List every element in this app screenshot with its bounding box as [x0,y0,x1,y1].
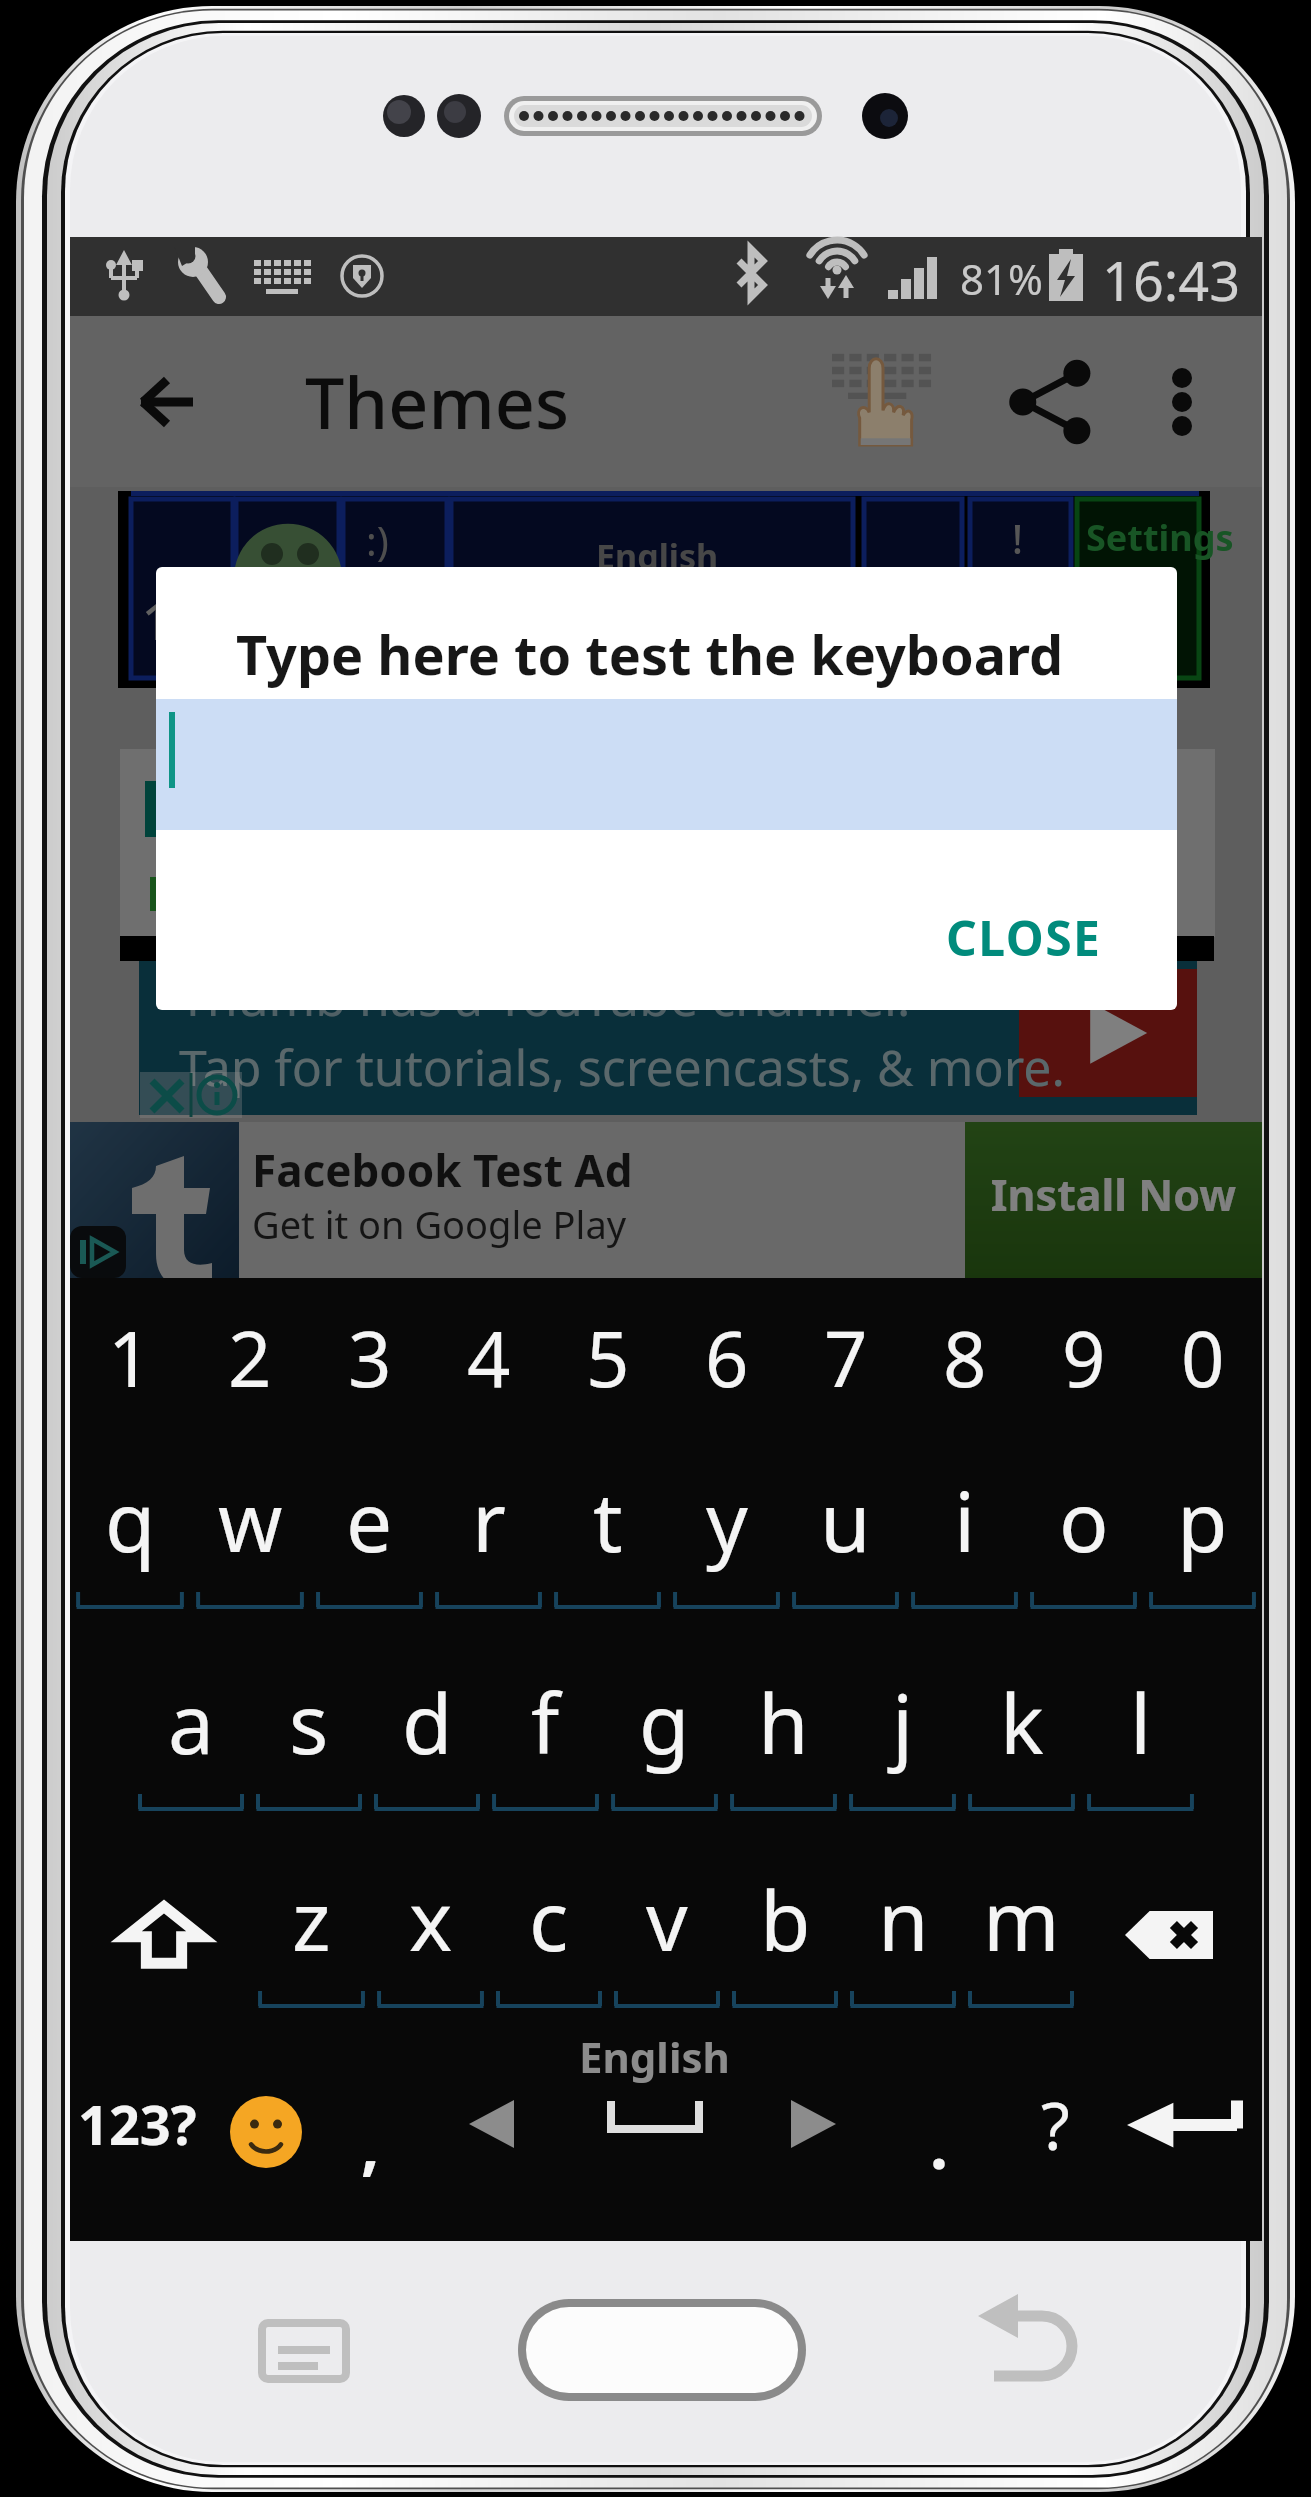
button[interactable]: , [315,2059,425,2189]
button[interactable]: Emoji [206,2067,326,2197]
button[interactable]: Theme card [120,749,1215,937]
button[interactable]: x [371,1858,490,2008]
staticText: w [218,1464,283,1576]
staticText: 9 [1062,1306,1106,1410]
staticText: Get it on Google Play [252,1198,627,1250]
staticText: . [930,2101,948,2188]
staticText: :) [366,513,389,567]
button[interactable]: a [132,1661,250,1811]
button[interactable]: CLOSE [894,875,1154,999]
staticText: n [878,1863,929,1975]
button[interactable]: m [962,1858,1080,2008]
button[interactable]: o [1024,1459,1143,1609]
button[interactable]: Previous [431,2059,551,2189]
staticText: y [706,1464,748,1576]
staticText: a [168,1666,215,1778]
button[interactable]: Test keyboard [810,316,950,487]
button[interactable]: i [905,1459,1024,1609]
staticText: j [892,1666,914,1778]
staticText: 81% [960,250,1043,307]
button[interactable]: ? [1000,2059,1110,2189]
button[interactable]: 2 [190,1297,310,1447]
button[interactable]: 3 [310,1297,429,1447]
staticText: English [596,533,719,579]
staticText: ! [1012,511,1023,565]
button[interactable]: 0 [1143,1297,1262,1447]
staticText: Facebook Test Ad [252,1140,633,1200]
staticText: i [954,1464,976,1576]
staticText: s [289,1666,329,1778]
button[interactable]: b [726,1858,844,2008]
staticText: u [820,1464,871,1576]
staticText: 16:43 [1102,243,1241,317]
staticText: x [409,1863,453,1975]
staticText: m [983,1863,1060,1975]
button[interactable]: Backspace [1099,1875,1239,1995]
button[interactable]: c [490,1858,608,2008]
button[interactable]: Theme preview [118,491,1210,688]
button[interactable]: Share [984,316,1114,487]
button[interactable]: 123? [62,2059,212,2189]
staticText: p [1177,1464,1228,1576]
button[interactable]: z [252,1858,371,2008]
button[interactable]: g [605,1661,724,1811]
staticText: Install Now [965,1165,1262,1224]
staticText: 6 [705,1306,749,1410]
button[interactable]: 5 [548,1297,667,1447]
staticText: z [292,1863,331,1975]
button[interactable]: Enter [1115,2059,1255,2189]
button[interactable]: Back [96,317,236,486]
staticText: 5 [586,1306,630,1410]
staticText: b [760,1863,811,1975]
button[interactable]: Facebook Test Ad [70,1122,1262,1278]
staticText: 123? [78,2087,197,2161]
button[interactable]: u [786,1459,905,1609]
staticText: q [105,1464,156,1576]
button[interactable]: v [608,1858,726,2008]
button[interactable]: n [844,1858,962,2008]
staticText: Tap for tutorials, screencasts, & more. [179,1033,1065,1101]
button[interactable]: w [190,1459,310,1609]
staticText: o [1059,1464,1109,1576]
button[interactable]: Next [753,2059,873,2189]
button[interactable]: 9 [1024,1297,1143,1447]
staticText: 8 [943,1306,987,1410]
staticText: 1 [108,1306,152,1410]
button[interactable]: k [962,1661,1081,1811]
button[interactable]: f [486,1661,605,1811]
button[interactable]: r [429,1459,548,1609]
button[interactable]: . [884,2059,994,2189]
button[interactable]: q [70,1459,190,1609]
button[interactable]: t [548,1459,667,1609]
staticText: 1 [142,587,171,655]
button[interactable]: Thumb has a YouTube channel. [139,961,1197,1115]
button[interactable]: l [1081,1661,1200,1811]
button[interactable]: e [310,1459,429,1609]
staticText: 2 [228,1306,272,1410]
staticText: CLOSE [946,905,1102,970]
staticText: Type here to test the keyboard [236,617,1064,691]
button[interactable]: y [667,1459,786,1609]
staticText: 0 [1181,1306,1225,1410]
button[interactable]: s [250,1661,368,1811]
staticText: f [531,1666,560,1778]
button[interactable]: Shift [94,1875,234,1995]
button[interactable]: 1 [70,1297,190,1447]
button[interactable]: 4 [429,1297,548,1447]
staticText: e [346,1464,393,1576]
button[interactable]: 6 [667,1297,786,1447]
staticText: Themes [305,354,569,449]
staticText: t [593,1464,623,1576]
button[interactable]: p [1143,1459,1262,1609]
button[interactable]: More options [1135,316,1229,487]
staticText: 7 [824,1306,868,1410]
staticText: k [1000,1666,1044,1778]
button[interactable]: h [724,1661,843,1811]
button[interactable]: 7 [786,1297,905,1447]
staticText: English [579,2028,730,2085]
staticText: d [402,1666,453,1778]
button[interactable]: d [368,1661,486,1811]
button[interactable]: 8 [905,1297,1024,1447]
button[interactable]: Space [529,2028,779,2188]
button[interactable]: j [843,1661,962,1811]
